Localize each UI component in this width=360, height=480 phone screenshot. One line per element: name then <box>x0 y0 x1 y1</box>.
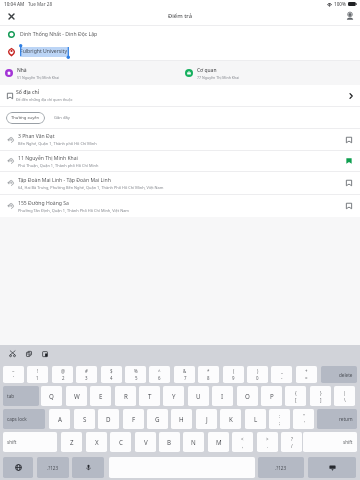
staticText: J <box>206 415 208 423</box>
button[interactable]: < <box>232 432 253 452</box>
button[interactable]: Save <box>343 200 355 212</box>
button[interactable]: + <box>296 366 317 383</box>
button[interactable]: ^ <box>149 366 170 383</box>
staticText: 6 <box>158 375 161 381</box>
staticText: ~ <box>12 368 15 374</box>
button[interactable]: X <box>86 432 107 452</box>
button[interactable]: P <box>261 386 282 406</box>
staticText: Thường xuyên <box>11 115 40 121</box>
button[interactable]: Thường xuyên <box>6 112 45 124</box>
button[interactable]: Fulbright University <box>0 43 360 60</box>
button[interactable]: O <box>237 386 258 406</box>
button[interactable]: delete <box>321 366 357 383</box>
staticText: .?123 <box>275 465 287 471</box>
button[interactable]: 3 Phan Văn Đạt <box>0 129 360 150</box>
button[interactable]: Tập Đoàn Mai Linh - Tập Đoàn Mai Linh <box>0 172 360 194</box>
staticText: 2 <box>62 375 65 381</box>
button[interactable]: D <box>98 409 119 429</box>
button[interactable]: ) <box>247 366 268 383</box>
staticText: # <box>85 368 88 374</box>
button[interactable]: Save <box>343 177 355 189</box>
button[interactable]: Account <box>340 7 360 25</box>
button[interactable]: Copy <box>23 348 34 359</box>
button[interactable]: | <box>334 386 355 406</box>
staticText: : <box>279 413 281 419</box>
button[interactable]: V <box>135 432 156 452</box>
button[interactable]: Dinh Thống Nhất - Dinh Độc Lập <box>0 26 360 43</box>
button[interactable]: Nhà <box>0 61 180 85</box>
staticText: Dinh Thống Nhất - Dinh Độc Lập <box>20 31 98 38</box>
button[interactable]: H <box>171 409 192 429</box>
button[interactable]: Sổ địa chỉ <box>0 85 360 106</box>
staticText: I <box>221 392 224 400</box>
button[interactable]: } <box>310 386 331 406</box>
button[interactable]: C <box>110 432 131 452</box>
button[interactable]: S <box>74 409 95 429</box>
staticText: 8 <box>207 375 210 381</box>
button[interactable]: $ <box>101 366 122 383</box>
button[interactable]: A <box>49 409 70 429</box>
button[interactable]: > <box>257 432 278 452</box>
button[interactable]: ~ <box>3 366 24 383</box>
button[interactable]: G <box>147 409 168 429</box>
staticText: caps lock <box>7 416 27 422</box>
button[interactable]: .?123 <box>37 457 69 478</box>
button[interactable]: Gần đây <box>51 112 73 124</box>
button[interactable]: B <box>159 432 180 452</box>
button[interactable]: & <box>174 366 195 383</box>
button[interactable]: _ <box>271 366 292 383</box>
button[interactable]: E <box>90 386 111 406</box>
button[interactable]: tab <box>3 386 39 406</box>
button[interactable]: M <box>208 432 229 452</box>
button[interactable]: J <box>196 409 217 429</box>
button[interactable]: Hide keyboard <box>308 457 356 478</box>
button[interactable]: Language <box>3 457 33 478</box>
button[interactable]: { <box>285 386 306 406</box>
button[interactable]: Y <box>163 386 184 406</box>
button[interactable]: Cơ quan <box>180 61 360 85</box>
staticText: > <box>266 436 269 442</box>
button[interactable]: T <box>139 386 160 406</box>
button[interactable]: Paste <box>39 348 50 359</box>
staticText: , <box>242 443 244 449</box>
button[interactable]: .?123 <box>258 457 304 478</box>
button[interactable]: Cut <box>7 348 18 359</box>
button[interactable]: @ <box>52 366 73 383</box>
button[interactable]: : <box>269 409 290 429</box>
staticText: * <box>207 368 210 374</box>
button[interactable]: ( <box>223 366 244 383</box>
button[interactable]: Save <box>343 155 355 167</box>
button[interactable]: Close <box>0 7 22 25</box>
staticText: Phường Tân Định, Quận 1, Thành Phố Hồ Ch… <box>18 208 130 213</box>
button[interactable]: L <box>245 409 266 429</box>
staticText: Cơ quan <box>197 67 217 74</box>
button[interactable]: # <box>76 366 97 383</box>
button[interactable]: I <box>212 386 233 406</box>
button[interactable]: N <box>183 432 204 452</box>
button[interactable]: ! <box>27 366 48 383</box>
button[interactable]: Save <box>343 134 355 146</box>
button[interactable]: 11 Nguyễn Thị Minh Khai <box>0 151 360 171</box>
button[interactable]: shift <box>3 432 57 452</box>
button[interactable]: 155 Đường Hoàng Sa <box>0 195 360 217</box>
button[interactable]: ? <box>281 432 302 452</box>
button[interactable]: return <box>317 409 357 429</box>
staticText: Để đến những địa chỉ quen thuộc <box>16 97 73 102</box>
staticText: R <box>124 392 128 400</box>
button[interactable]: K <box>220 409 241 429</box>
button[interactable]: R <box>115 386 136 406</box>
button[interactable]: caps lock <box>3 409 45 429</box>
button[interactable]: F <box>123 409 144 429</box>
button[interactable]: % <box>125 366 146 383</box>
button[interactable]: " <box>293 409 314 429</box>
button[interactable]: Z <box>61 432 82 452</box>
button[interactable]: W <box>66 386 87 406</box>
button[interactable]: U <box>188 386 209 406</box>
button[interactable]: shift <box>303 432 357 452</box>
button[interactable]: Q <box>41 386 62 406</box>
staticText: + <box>305 368 308 374</box>
staticText: U <box>196 392 201 400</box>
button[interactable]: * <box>198 366 219 383</box>
button[interactable]: Dictation <box>72 457 104 478</box>
